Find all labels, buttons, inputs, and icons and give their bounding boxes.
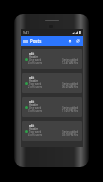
staticText: Header xyxy=(29,55,38,59)
staticText: Series added xyxy=(22,82,78,86)
staticText: 11:05 PM Yes xyxy=(22,109,78,113)
button[interactable]: edit xyxy=(22,97,82,117)
staticText: edit xyxy=(29,52,35,56)
button[interactable]: edit xyxy=(22,121,82,141)
staticText: 2 of 6 users xyxy=(28,85,43,89)
staticText: Posts xyxy=(30,38,42,44)
button[interactable]: edit xyxy=(22,73,82,93)
staticText: edit xyxy=(29,124,35,128)
staticText: Series added xyxy=(22,58,78,62)
button[interactable]: edit xyxy=(22,49,82,69)
staticText: One week xyxy=(29,58,42,62)
button[interactable]: Notifications xyxy=(66,36,74,46)
staticText: One week xyxy=(29,106,42,110)
staticText: Header xyxy=(29,79,38,83)
staticText: Two week xyxy=(29,130,42,134)
staticText: Two week xyxy=(29,82,42,86)
staticText: Series added xyxy=(22,106,78,110)
staticText: 9:41 xyxy=(23,31,29,35)
staticText: Header xyxy=(29,127,38,131)
staticText: 12:47 AM Yes xyxy=(22,61,78,65)
staticText: 4 of 6 users xyxy=(28,133,43,137)
button[interactable]: Open navigation drawer xyxy=(21,36,30,46)
staticText: edit xyxy=(29,100,35,104)
staticText: edit xyxy=(29,76,35,80)
staticText: 06:29 AM Yes xyxy=(22,85,78,89)
staticText: 3 of 6 users xyxy=(28,109,43,113)
staticText: 4 of 6 users xyxy=(28,61,43,65)
staticText: Series added xyxy=(22,130,78,134)
staticText: 03:18 PM Yes xyxy=(22,133,78,137)
button[interactable]: Sync xyxy=(74,36,82,46)
staticText: Header xyxy=(29,103,38,107)
